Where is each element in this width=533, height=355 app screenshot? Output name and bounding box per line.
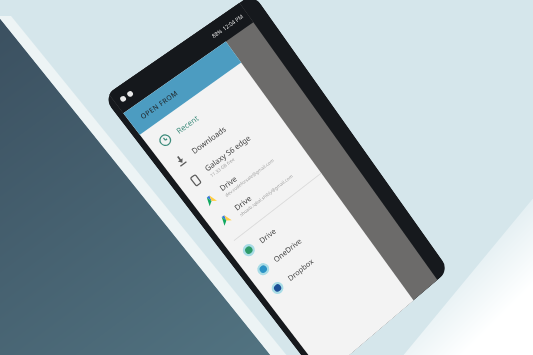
staticText: OPEN FROM [138, 88, 180, 121]
other: Recent [156, 131, 174, 149]
button[interactable]: OneDrive [243, 196, 351, 289]
button[interactable]: Drive [190, 127, 302, 220]
staticText: Dropbox [286, 256, 315, 283]
staticText: OneDrive [271, 235, 304, 264]
button[interactable]: Drive [205, 146, 316, 239]
staticText: 11.33 GB free [209, 156, 236, 178]
button[interactable]: Downloads [159, 88, 274, 180]
staticText: Galaxy S6 edge [202, 132, 253, 173]
staticText: Drive [232, 193, 253, 212]
staticText: 88% [210, 27, 223, 39]
button[interactable]: Recent [144, 68, 259, 160]
staticText: Drive [217, 173, 239, 193]
staticText: 12:04 PM [221, 12, 244, 32]
button[interactable]: Galaxy S6 edge [175, 107, 288, 200]
staticText: Recent [174, 112, 201, 136]
staticText: dev.codeforsale@gmail.com [223, 157, 275, 198]
staticText: Drive [257, 226, 278, 245]
staticText: Downloads [189, 123, 228, 156]
button[interactable]: OPEN FROM [123, 41, 241, 135]
button[interactable]: Drive [229, 177, 337, 270]
staticText: shoaib.iqbal.shibly@gmail.com [238, 172, 294, 217]
button[interactable]: Dropbox [258, 214, 364, 307]
